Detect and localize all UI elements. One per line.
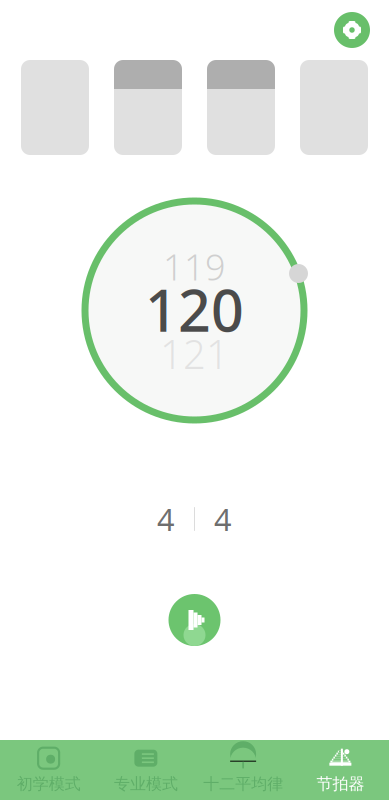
staticText: 4: [157, 499, 175, 539]
staticText: 初学模式: [17, 774, 81, 794]
button[interactable]: 4: [138, 498, 194, 540]
button[interactable]: 节拍器: [292, 740, 389, 800]
button[interactable]: 初学模式: [0, 740, 97, 800]
button[interactable]: Settings: [328, 6, 376, 54]
button[interactable]: 4: [195, 498, 251, 540]
staticText: 十二平均律: [203, 774, 283, 794]
button[interactable]: 专业模式: [97, 740, 194, 800]
staticText: 4: [214, 499, 232, 539]
staticText: 节拍器: [316, 774, 364, 794]
staticText: 专业模式: [114, 774, 178, 794]
button[interactable]: 十二平均律: [194, 740, 292, 800]
staticText: 120: [145, 271, 244, 347]
staticText: 119: [163, 243, 226, 290]
button[interactable]: Play: [162, 588, 226, 652]
staticText: 121: [160, 327, 229, 380]
